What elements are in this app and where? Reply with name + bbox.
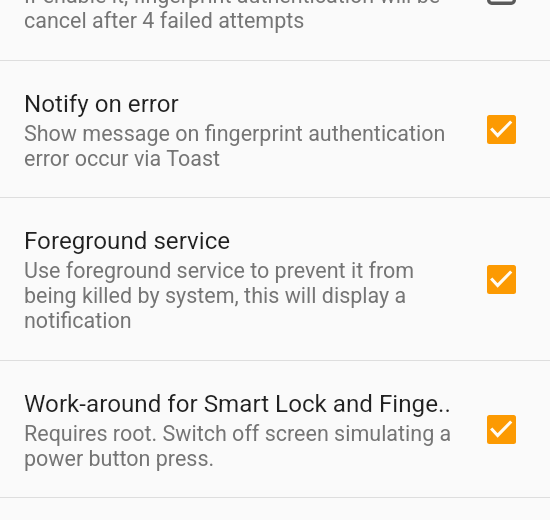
staticText: If enable it, fingerprint authentication… (24, 0, 441, 33)
button[interactable]: Enabled (479, 107, 523, 151)
staticText: Use foreground service to prevent it fro… (24, 258, 415, 333)
button[interactable]: Foreground service (0, 198, 550, 360)
staticText: Notify on error (24, 90, 179, 118)
staticText: Work-around for Smart Lock and Finge.. (24, 390, 451, 418)
button[interactable]: Notify on error (0, 61, 550, 197)
staticText: Requires root. Switch off screen simulat… (24, 421, 452, 471)
staticText: Foreground service (24, 227, 231, 255)
button[interactable]: Disabled (479, 0, 523, 12)
button[interactable]: Work-around for Smart Lock and Finge.. (0, 361, 550, 497)
button[interactable]: Fingerprint lock (0, 0, 550, 56)
button[interactable]: Enabled (479, 257, 523, 301)
staticText: Show message on fingerprint authenticati… (24, 121, 446, 171)
button[interactable]: Enabled (479, 407, 523, 451)
